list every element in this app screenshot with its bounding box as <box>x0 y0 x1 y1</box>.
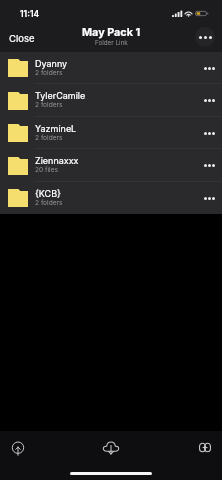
button[interactable]: Copy link <box>192 434 218 460</box>
button[interactable]: Row options <box>198 84 220 117</box>
button[interactable]: TylerCamile <box>0 84 222 117</box>
button[interactable]: Row options <box>198 117 220 149</box>
button[interactable]: Dyanny <box>0 52 222 84</box>
staticText: 2 folders <box>35 199 63 207</box>
button[interactable]: Row options <box>198 182 220 214</box>
staticText: Folder Link <box>95 39 128 47</box>
button[interactable]: Ziennaxxx <box>0 149 222 182</box>
staticText: 20 files <box>35 166 58 174</box>
staticText: TylerCamile <box>35 90 86 101</box>
button[interactable]: Download <box>98 434 124 460</box>
button[interactable]: Row options <box>198 52 220 84</box>
staticText: {KCB} <box>35 188 61 199</box>
button[interactable]: Close <box>0 24 45 50</box>
staticText: Dyanny <box>35 58 68 69</box>
staticText: 11:14 <box>20 9 40 19</box>
button[interactable]: More options <box>195 27 215 47</box>
staticText: 2 folders <box>35 69 63 77</box>
staticText: May Pack 1 <box>82 26 141 39</box>
button[interactable]: Share <box>5 434 31 460</box>
staticText: 2 folders <box>35 101 63 109</box>
button[interactable]: {KCB} <box>0 182 222 214</box>
staticText: 2 folders <box>35 134 63 142</box>
staticText: Close <box>9 33 35 44</box>
button[interactable]: YazmineL <box>0 117 222 149</box>
staticText: YazmineL <box>35 123 77 134</box>
staticText: Ziennaxxx <box>35 155 79 166</box>
button[interactable]: Row options <box>198 149 220 182</box>
